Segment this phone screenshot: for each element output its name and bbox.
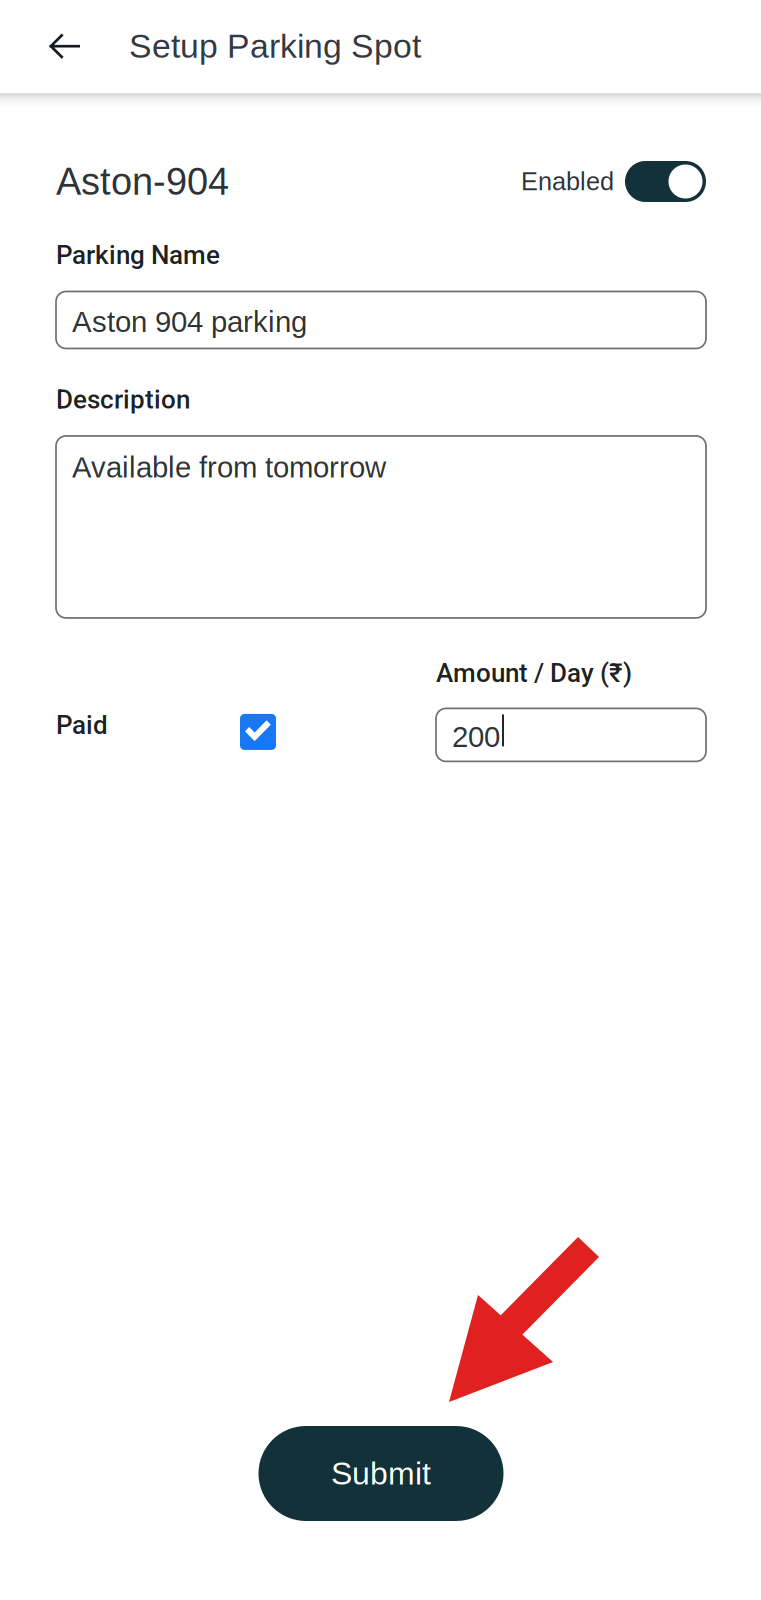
staticText: Available from tomorrow: [72, 451, 386, 484]
button[interactable]: Back: [16, 0, 113, 92]
staticText: Aston-904: [56, 160, 229, 203]
staticText: Description: [56, 384, 190, 415]
staticText: Paid: [56, 710, 108, 740]
staticText: Enabled: [521, 167, 614, 196]
staticText: Submit: [331, 1456, 431, 1491]
staticText: 200: [452, 720, 500, 753]
staticText: Aston 904 parking: [72, 305, 307, 338]
staticText: Amount / Day (₹): [436, 658, 632, 688]
staticText: Setup Parking Spot: [129, 27, 421, 65]
button[interactable]: Paid: [240, 714, 276, 750]
button[interactable]: Enabled: [625, 161, 706, 202]
button[interactable]: Submit: [258, 1426, 503, 1521]
staticText: Parking Name: [56, 240, 220, 270]
